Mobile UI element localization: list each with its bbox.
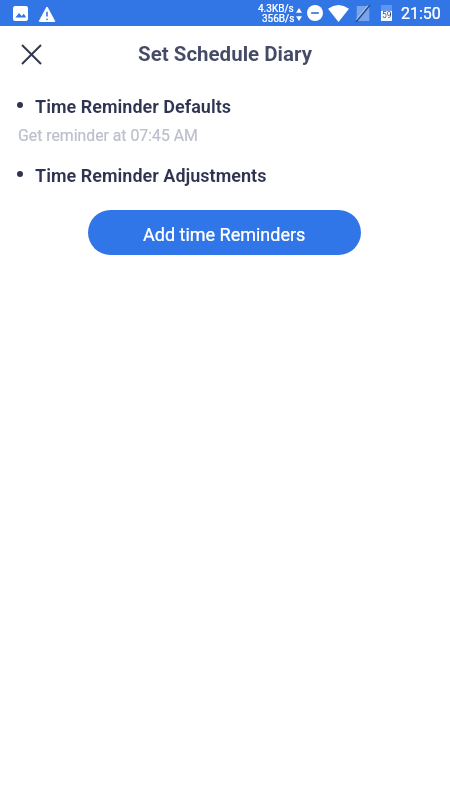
button[interactable]: Time Reminder Defaults xyxy=(0,94,450,116)
staticText: Set Schedule Diary xyxy=(138,42,312,66)
button[interactable]: Close xyxy=(14,37,48,71)
button[interactable]: Add time Reminders xyxy=(88,210,361,255)
staticText: Time Reminder Defaults xyxy=(35,96,231,117)
staticText: 4.3KB/s xyxy=(258,3,294,15)
staticText: Time Reminder Adjustments xyxy=(35,165,267,186)
staticText: 356B/s xyxy=(262,13,295,25)
button[interactable]: Time Reminder Adjustments xyxy=(0,163,450,185)
staticText: 59 xyxy=(382,10,392,20)
staticText: 21:50 xyxy=(401,4,441,23)
staticText: Get reminder at 07:45 AM xyxy=(18,126,198,145)
staticText: Add time Reminders xyxy=(143,224,306,245)
